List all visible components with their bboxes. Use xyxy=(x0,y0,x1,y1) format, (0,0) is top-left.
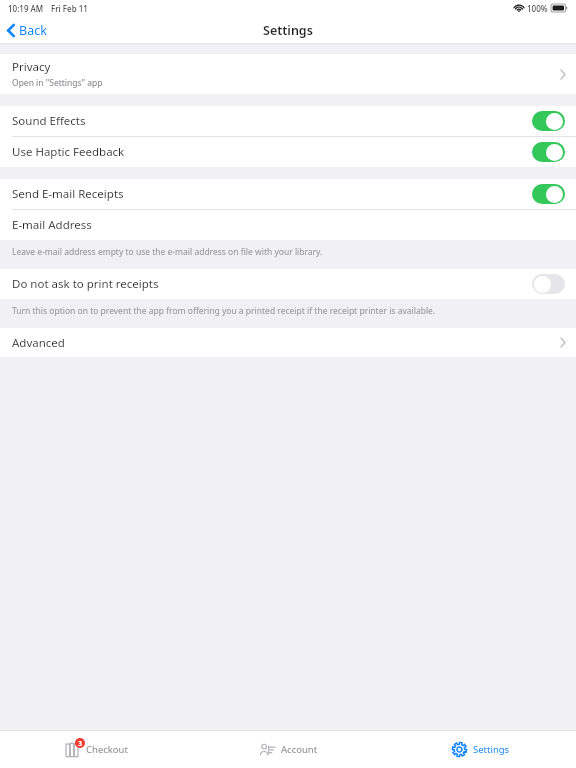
staticText: Account xyxy=(281,743,318,756)
staticText: Advanced xyxy=(12,335,65,351)
button[interactable]: Privacy xyxy=(0,54,576,94)
button[interactable]: Toggle on xyxy=(532,142,565,162)
button[interactable]: Settings xyxy=(384,731,576,768)
button[interactable]: Advanced xyxy=(0,328,576,357)
button[interactable]: Back xyxy=(0,16,57,44)
staticText: E-mail Address xyxy=(12,217,92,233)
button[interactable]: Toggle on xyxy=(532,111,565,131)
button[interactable]: 3 xyxy=(0,731,192,768)
button[interactable]: E-mail Address xyxy=(0,210,576,240)
staticText: Settings xyxy=(473,743,510,756)
button[interactable]: Toggle off xyxy=(532,274,565,294)
button[interactable]: Toggle on xyxy=(532,184,565,204)
staticText: Settings xyxy=(263,22,313,39)
staticText: 3 xyxy=(78,739,82,748)
staticText: Turn this option on to prevent the app f… xyxy=(12,305,436,317)
staticText: Privacy xyxy=(12,59,51,75)
staticText: Do not ask to print receipts xyxy=(12,276,532,292)
staticText: Send E-mail Receipts xyxy=(12,186,532,202)
staticText: Back xyxy=(19,22,47,39)
button[interactable]: Sound Effects xyxy=(0,106,576,136)
staticText: Open in "Settings" app xyxy=(12,77,103,89)
staticText: Sound Effects xyxy=(12,113,532,129)
staticText: 10:19 AM xyxy=(8,3,44,14)
staticText: Use Haptic Feedback xyxy=(12,144,532,160)
staticText: Checkout xyxy=(86,743,128,756)
button[interactable]: Do not ask to print receipts xyxy=(0,269,576,299)
staticText: 100% xyxy=(527,3,548,14)
button[interactable]: Use Haptic Feedback xyxy=(0,137,576,167)
staticText: Fri Feb 11 xyxy=(51,3,88,14)
button[interactable]: Send E-mail Receipts xyxy=(0,179,576,209)
button[interactable]: Account xyxy=(192,731,384,768)
staticText: Leave e-mail address empty to use the e-… xyxy=(12,246,323,258)
